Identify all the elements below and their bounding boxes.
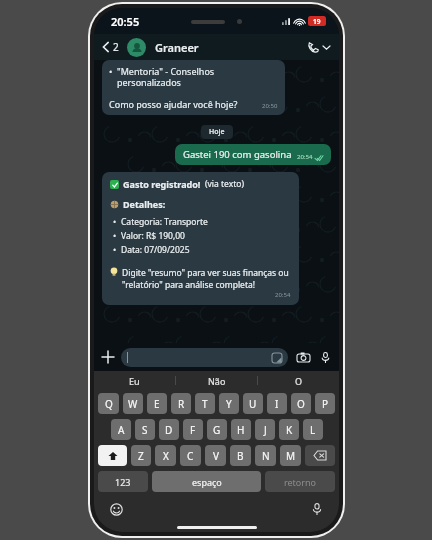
- button[interactable]: Eu: [94, 371, 175, 390]
- button[interactable]: A: [111, 419, 131, 440]
- button[interactable]: Y: [219, 393, 239, 414]
- staticText: Y: [226, 397, 232, 411]
- staticText: retorno: [284, 476, 317, 488]
- button[interactable]: Voice message: [317, 349, 333, 365]
- button[interactable]: espaço: [152, 471, 261, 492]
- button[interactable]: O: [258, 371, 339, 390]
- staticText: D: [165, 423, 173, 437]
- button[interactable]: F: [183, 419, 203, 440]
- staticText: H: [237, 423, 245, 437]
- button[interactable]: Não: [176, 371, 257, 390]
- staticText: •: [113, 244, 117, 256]
- button[interactable]: G: [207, 419, 227, 440]
- button[interactable]: R: [171, 393, 191, 414]
- staticText: W: [128, 397, 138, 411]
- button[interactable]: M: [280, 445, 301, 466]
- staticText: I: [275, 397, 279, 411]
- button[interactable]: I: [267, 393, 287, 414]
- staticText: Z: [138, 449, 144, 463]
- staticText: Data: 07/09/2025: [121, 244, 190, 256]
- staticText: A: [118, 423, 125, 437]
- staticText: N: [262, 449, 270, 463]
- button[interactable]: Attach: [100, 349, 116, 365]
- staticText: O: [295, 375, 303, 387]
- staticText: F: [190, 423, 196, 437]
- staticText: Gastei 190 com gasolina: [183, 148, 292, 161]
- staticText: Detalhes:: [123, 198, 166, 210]
- button[interactable]: J: [255, 419, 275, 440]
- button[interactable]: O: [291, 393, 311, 414]
- button[interactable]: V: [205, 445, 226, 466]
- button[interactable]: Dictation: [309, 501, 325, 517]
- button[interactable]: X: [155, 445, 176, 466]
- button[interactable]: U: [243, 393, 263, 414]
- staticText: X: [163, 449, 169, 463]
- staticText: 2: [113, 40, 119, 54]
- staticText: (via texto): [205, 178, 244, 190]
- button[interactable]: Backspace: [305, 445, 335, 466]
- staticText: •: [109, 65, 113, 77]
- staticText: T: [202, 397, 208, 411]
- staticText: M: [286, 449, 296, 463]
- staticText: •: [113, 216, 117, 228]
- staticText: Categoria: Transporte: [121, 216, 208, 228]
- staticText: 123: [115, 476, 131, 488]
- staticText: Gasto registrado!: [123, 178, 201, 190]
- button[interactable]: C: [180, 445, 201, 466]
- button[interactable]: P: [315, 393, 335, 414]
- staticText: R: [178, 397, 185, 411]
- button[interactable]: L: [303, 419, 323, 440]
- button[interactable]: N: [255, 445, 276, 466]
- button[interactable]: Profile photo: [127, 38, 146, 57]
- staticText: P: [322, 397, 329, 411]
- button[interactable]: retorno: [265, 471, 335, 492]
- staticText: 19: [313, 17, 321, 26]
- button[interactable]: •: [102, 60, 285, 115]
- staticText: J: [264, 423, 267, 437]
- staticText: 20:54: [275, 291, 291, 299]
- staticText: K: [286, 423, 293, 437]
- staticText: B: [237, 449, 244, 463]
- staticText: 20:55: [111, 14, 140, 29]
- button[interactable]: K: [279, 419, 299, 440]
- button[interactable]: Emoji: [108, 501, 124, 517]
- staticText: Como posso ajudar você hoje?: [109, 98, 257, 110]
- button[interactable]: S: [135, 419, 155, 440]
- staticText: 20:50: [262, 102, 278, 110]
- button[interactable]: Back, 2 unread: [100, 40, 121, 54]
- button[interactable]: Q: [98, 393, 119, 414]
- staticText: •: [113, 230, 117, 242]
- staticText: V: [213, 449, 219, 463]
- staticText: S: [142, 423, 148, 437]
- staticText: L: [310, 423, 316, 437]
- button[interactable]: Camera: [295, 349, 311, 365]
- button[interactable]: B: [230, 445, 251, 466]
- button[interactable]: Shift: [98, 445, 127, 466]
- staticText: E: [154, 397, 160, 411]
- staticText: G: [213, 423, 221, 437]
- button[interactable]: T: [195, 393, 215, 414]
- button[interactable]: [121, 348, 288, 367]
- button[interactable]: W: [123, 393, 143, 414]
- staticText: O: [297, 397, 305, 411]
- button[interactable]: D: [159, 419, 179, 440]
- button[interactable]: 123: [98, 471, 148, 492]
- staticText: Digite "resumo" para ver suas finanças o…: [122, 267, 291, 291]
- staticText: U: [249, 397, 257, 411]
- staticText: espaço: [192, 476, 222, 488]
- staticText: Valor: R$ 190,00: [121, 230, 185, 242]
- staticText: C: [187, 449, 194, 463]
- button[interactable]: Graneer: [155, 40, 304, 55]
- button[interactable]: Gastei 190 com gasolina: [175, 144, 331, 165]
- staticText: Hoje: [209, 127, 225, 137]
- button[interactable]: H: [231, 419, 251, 440]
- button[interactable]: Gasto registrado!: [102, 172, 299, 305]
- staticText: "Mentoria" - Conselhos personalizados: [117, 65, 278, 89]
- staticText: 20:54: [297, 153, 313, 161]
- button[interactable]: E: [147, 393, 167, 414]
- staticText: Eu: [129, 375, 140, 387]
- button[interactable]: Z: [131, 445, 151, 466]
- button[interactable]: Call options: [304, 41, 333, 54]
- staticText: Não: [208, 375, 226, 387]
- staticText: Q: [105, 397, 113, 411]
